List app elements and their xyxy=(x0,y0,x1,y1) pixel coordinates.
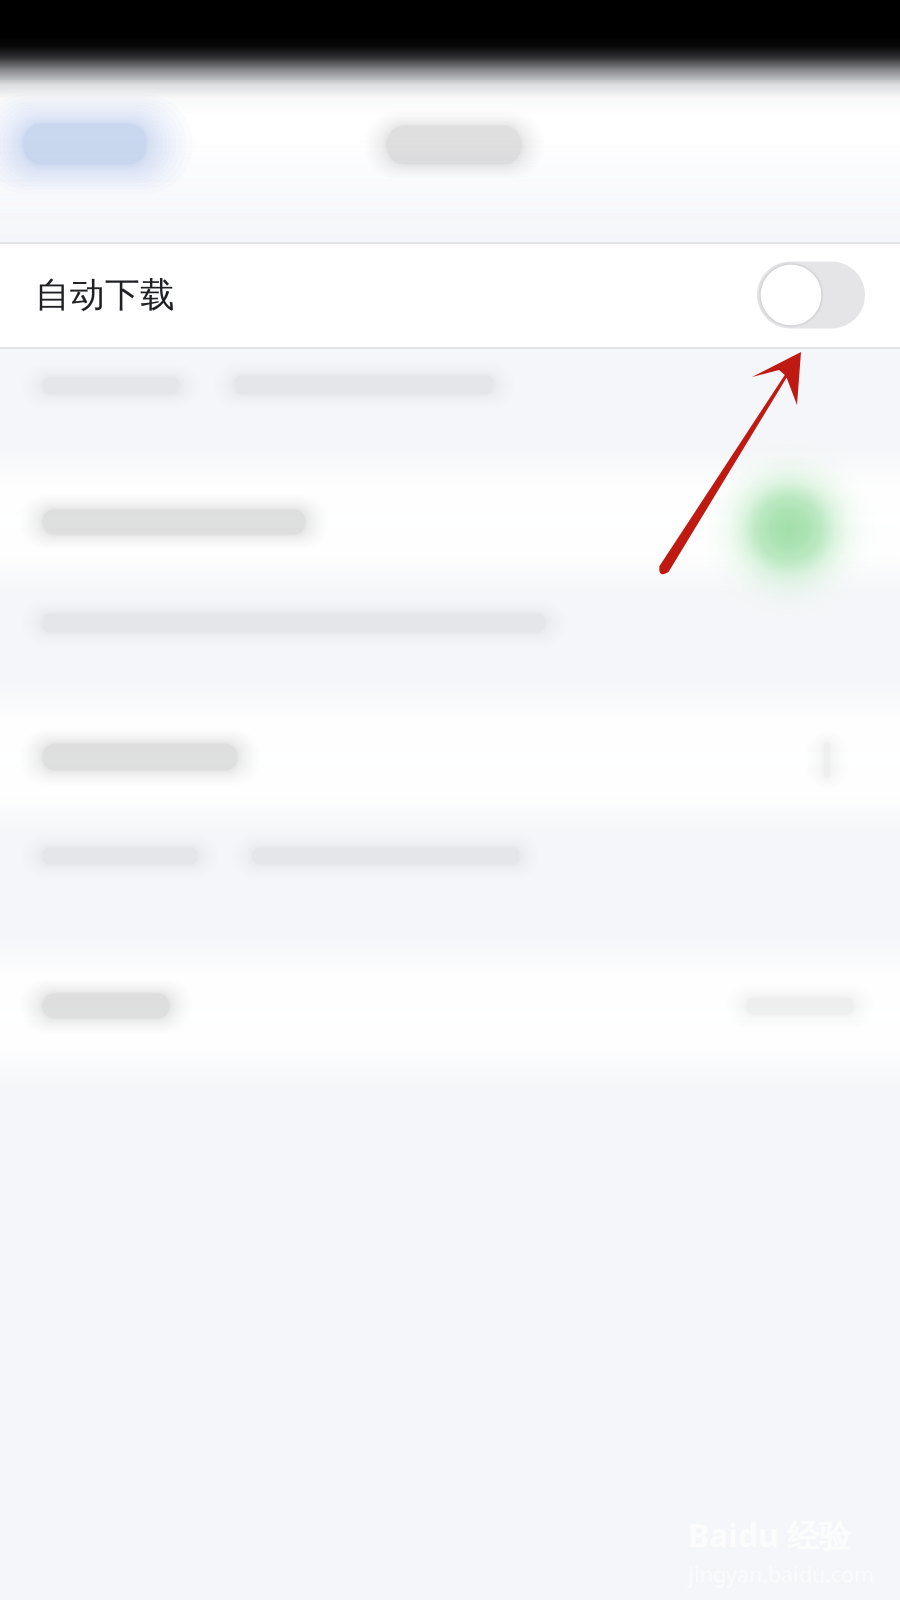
staticText: 自动下载 xyxy=(35,274,175,316)
button[interactable]: 自动下载 xyxy=(0,242,900,348)
button[interactable]: Back xyxy=(0,93,188,203)
